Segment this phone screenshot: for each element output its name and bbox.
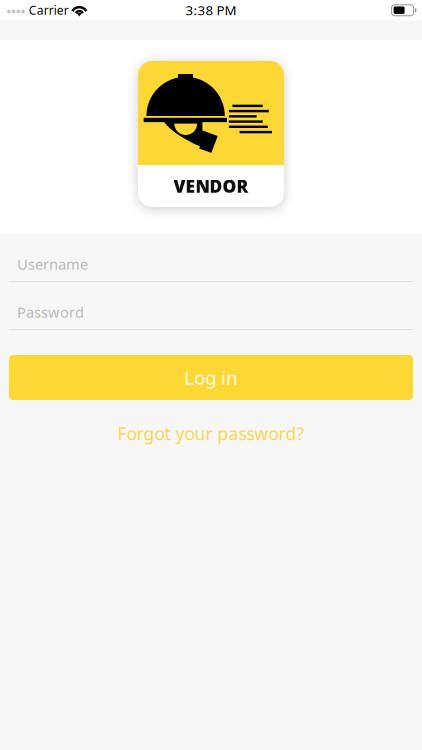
staticText: VENDOR (173, 174, 248, 197)
button[interactable]: Forgot your password? (117, 413, 304, 454)
staticText: Log in (184, 365, 238, 390)
button[interactable]: Log in (9, 355, 413, 400)
staticText: Carrier (29, 2, 69, 18)
staticText: Username (17, 254, 88, 274)
staticText: 3:38 PM (185, 1, 236, 19)
staticText: Forgot your password? (117, 422, 304, 445)
staticText: Password (17, 302, 84, 322)
